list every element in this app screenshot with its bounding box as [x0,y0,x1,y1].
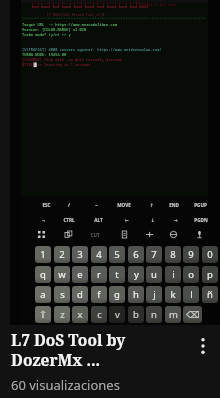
button[interactable]: 6 [128,246,144,263]
staticText: q [40,268,46,281]
button[interactable]: m [165,306,181,323]
button[interactable]: k [165,286,181,303]
button[interactable]: g [109,286,125,303]
button[interactable]: o [183,266,199,283]
button[interactable]: j [146,286,162,303]
button[interactable]: 9 [183,246,199,263]
staticText: CUT [90,232,100,238]
button[interactable]: s [54,286,70,303]
button[interactable]: 7 [146,246,162,263]
staticText: TURBO NODE: 19456.88 [22,52,67,57]
button[interactable]: w [54,266,70,283]
staticText: PGUP [194,202,207,208]
button[interactable]: h [128,286,144,303]
staticText: 8 [170,248,176,261]
button[interactable]: v [109,306,125,323]
staticText: → [174,218,178,223]
staticText: e [77,268,83,281]
staticText: [COLORED] flip with -xx whit noisedly di… [22,57,122,62]
staticText: k [170,288,176,301]
button[interactable]: More options [191,334,215,358]
staticText: ~ ~ L7 DDoS/DoS Attack Tool v2.0 ~ ~ [39,12,113,17]
staticText: f [97,288,101,301]
button[interactable]: p [202,266,218,283]
button[interactable]: 0 [202,246,218,263]
button[interactable]: c [91,306,107,323]
button[interactable]: ñ [202,286,218,303]
button[interactable]: END [161,200,187,210]
staticText: ESC [42,202,51,208]
staticText: ⌫ [186,309,200,320]
staticText: CTRL [63,217,75,223]
staticText: – [95,202,98,208]
button[interactable]: keyboard key [136,229,162,240]
staticText: c [97,308,102,321]
button[interactable]: ⇧ [35,306,51,323]
button[interactable]: x [72,306,88,323]
button[interactable]: 4 [91,246,107,263]
staticText: ↓ [151,218,155,223]
button[interactable]: y [128,266,144,283]
button[interactable]: 8 [165,246,181,263]
button[interactable]: → [163,215,189,225]
staticText: t [115,268,119,281]
button[interactable]: z [54,306,70,323]
button[interactable]: t [109,266,125,283]
button[interactable]: ALT [85,215,111,225]
button[interactable]: a [35,286,51,303]
button[interactable]: 5 [109,246,125,263]
button[interactable]: keyboard key [186,229,212,240]
staticText: 0 [207,248,213,261]
button[interactable]: keyboard key [160,229,186,240]
staticText: p [207,268,213,281]
staticText: m [169,308,178,321]
button[interactable]: ↓ [140,215,166,225]
button[interactable]: PGDN [188,215,214,225]
button[interactable]: b [128,306,144,323]
button[interactable]: f [91,286,107,303]
button[interactable]: 2 [54,246,70,263]
button[interactable]: CTRL [56,215,82,225]
button[interactable]: r [91,266,107,283]
staticText: z [60,308,65,321]
button[interactable]: ← [114,215,140,225]
button[interactable]: keyboard key [111,229,137,240]
button[interactable]: MOVE [111,200,137,210]
staticText: h [133,288,139,301]
button[interactable]: 3 [72,246,88,263]
staticText: 5 [114,248,120,261]
staticText: l [190,288,193,301]
staticText: ATTACK is Starting in 1 seconds... [22,62,98,67]
button[interactable]: 1 [35,246,51,263]
button[interactable]: keyboard key [28,229,54,240]
button[interactable]: ¬ [30,215,56,225]
staticText: L7 DoS Tool by DozerMx ... [11,329,151,371]
button[interactable]: q [35,266,51,283]
staticText: y [134,268,139,281]
button[interactable]: n [146,306,162,323]
staticText: 6 [133,248,139,261]
button[interactable]: keyboard key [82,229,108,240]
button[interactable]: keyboard key [55,229,81,240]
staticText: ⇧ [39,309,47,320]
staticText: / [68,202,70,208]
button[interactable]: i [165,266,181,283]
staticText: 60 visualizaciones [11,376,120,394]
button[interactable]: u [146,266,162,283]
button[interactable]: ⌫ [183,306,202,323]
button[interactable]: e [72,266,88,283]
staticText: [ULTRAFAST] 4000 servers against: https:… [22,47,162,52]
button[interactable]: d [72,286,88,303]
staticText: i [172,268,175,281]
staticText: ← [125,218,129,223]
button[interactable]: PGUP [187,200,213,210]
button[interactable]: – [83,200,109,210]
button[interactable]: ~ ~ L7 DDoS/DoS Attack Tool v2.0 ~ ~ [10,0,220,325]
button[interactable]: l [183,286,199,303]
button[interactable]: ↑ [139,200,165,210]
button[interactable]: ESC [33,200,59,210]
staticText: n [151,308,157,321]
button[interactable]: / [56,200,82,210]
